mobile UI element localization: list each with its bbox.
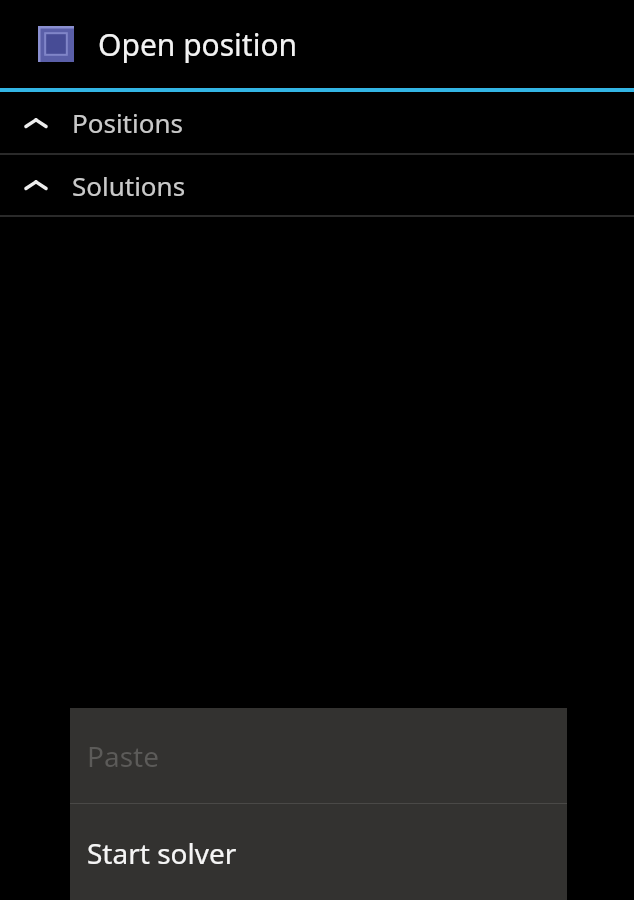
staticText: Positions	[72, 105, 183, 140]
button[interactable]: Start solver	[70, 804, 567, 900]
staticText: Paste	[87, 737, 159, 775]
staticText: Open position	[98, 24, 298, 65]
button[interactable]: App icon	[0, 0, 634, 88]
staticText: Solutions	[72, 168, 186, 203]
staticText: Start solver	[87, 834, 237, 872]
button[interactable]: Collapse section	[0, 92, 634, 153]
other: App icon	[38, 26, 74, 62]
button[interactable]: Paste	[70, 708, 567, 803]
button[interactable]: Collapse section	[0, 155, 634, 215]
other: Collapse section	[24, 177, 48, 193]
other: Collapse section	[24, 115, 48, 131]
